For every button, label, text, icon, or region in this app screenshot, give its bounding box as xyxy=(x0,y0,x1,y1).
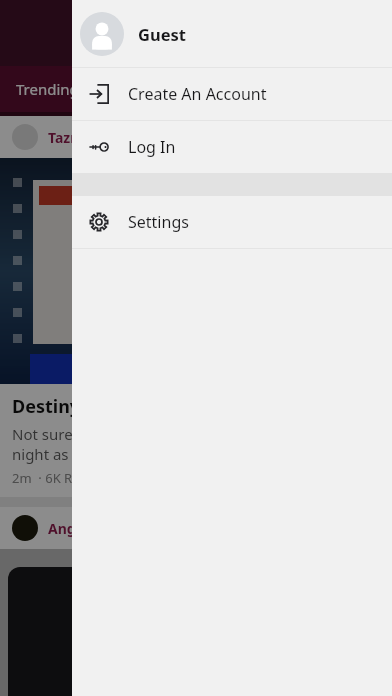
other: Log in xyxy=(89,137,109,157)
staticText: Not sure what I'm playing to night as I xyxy=(12,424,212,464)
staticText: Log In xyxy=(128,136,176,158)
staticText: Angry Joe xyxy=(48,519,116,538)
staticText: Guest xyxy=(138,23,186,45)
staticText: Tazmanian xyxy=(48,128,124,147)
staticText: 2m · 6K Reads xyxy=(12,469,102,487)
staticText: Settings xyxy=(128,211,189,233)
staticText: Trending xyxy=(16,79,79,99)
other: Settings xyxy=(89,212,109,232)
other: Create an account xyxy=(89,84,109,104)
button[interactable]: Guest xyxy=(72,0,392,67)
staticText: Destiny 2 xyxy=(12,394,96,419)
button[interactable]: Settings xyxy=(72,196,392,248)
button[interactable]: Log in xyxy=(72,121,392,173)
staticText: Create An Account xyxy=(128,83,267,105)
button[interactable]: Create an account xyxy=(72,68,392,120)
